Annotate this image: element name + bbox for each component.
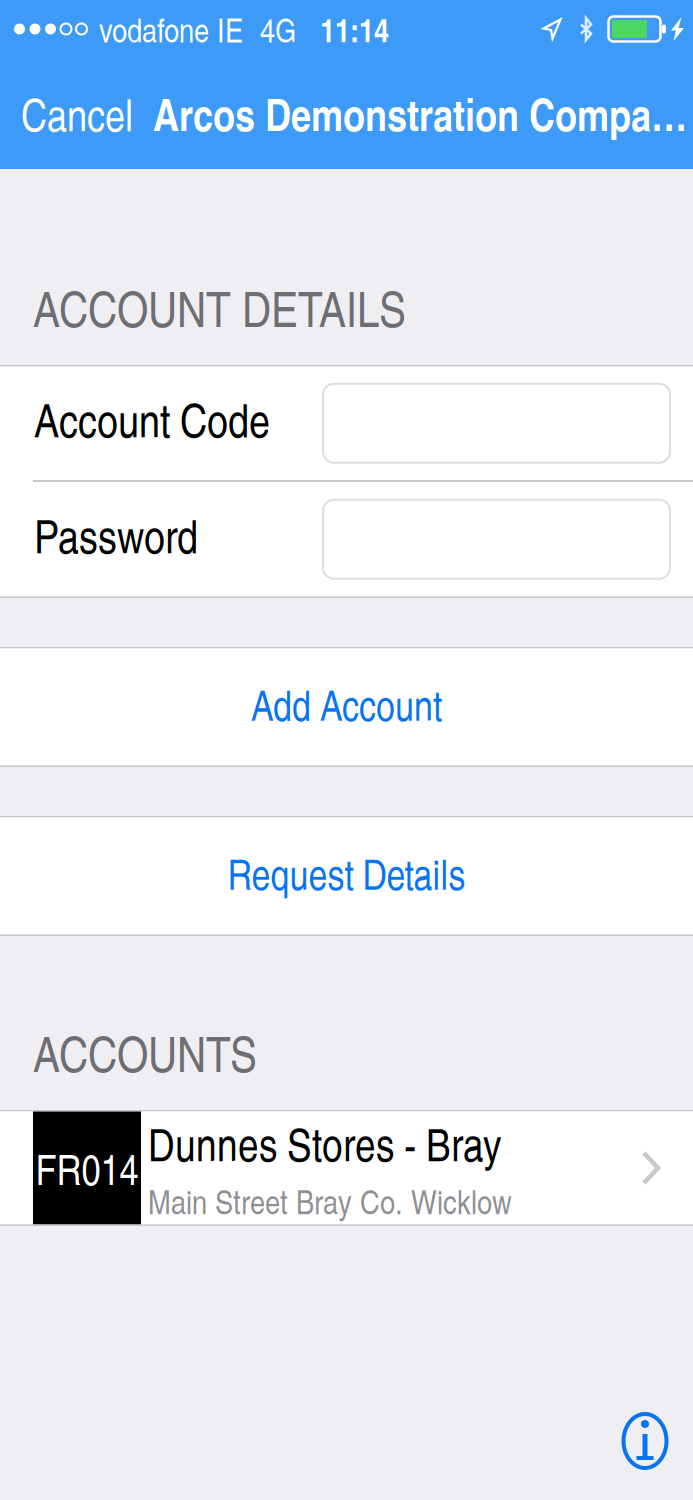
- button[interactable]: Information: [605, 1401, 685, 1481]
- staticText: 11:14: [320, 5, 389, 53]
- staticText: ACCOUNTS: [33, 1018, 257, 1086]
- staticText: vodafone IE: [99, 6, 243, 52]
- staticText: Cancel: [21, 83, 133, 144]
- staticText: Add Account: [251, 676, 442, 732]
- staticText: FR014: [35, 1139, 138, 1197]
- staticText: 4G: [260, 6, 296, 52]
- button[interactable]: Cancel: [0, 58, 153, 169]
- staticText: Arcos Demonstration Compa…: [153, 82, 687, 144]
- staticText: Account Code: [34, 387, 270, 450]
- staticText: Main Street Bray Co. Wicklow: [148, 1178, 512, 1224]
- staticText: Dunnes Stores - Bray: [148, 1112, 501, 1174]
- button[interactable]: FR014: [0, 1111, 693, 1224]
- button[interactable]: Add Account: [0, 648, 693, 765]
- staticText: Password: [34, 503, 198, 566]
- button[interactable]: Request Details: [0, 817, 693, 934]
- staticText: Request Details: [227, 845, 465, 901]
- staticText: ACCOUNT DETAILS: [33, 273, 406, 341]
